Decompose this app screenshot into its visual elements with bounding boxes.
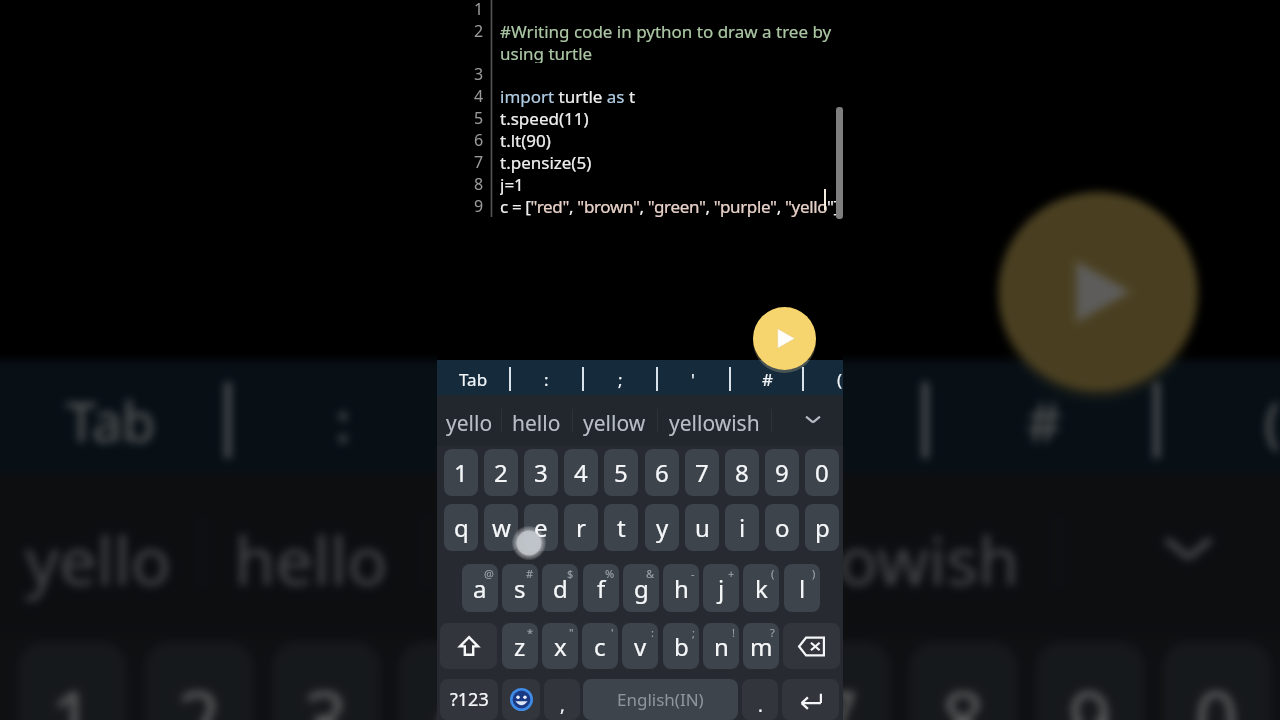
button[interactable]: Run bbox=[753, 307, 816, 370]
button[interactable]: # bbox=[985, 366, 1100, 477]
button[interactable]: 5 bbox=[526, 642, 634, 720]
button[interactable]: 0 bbox=[1163, 642, 1271, 720]
staticText: h bbox=[674, 572, 689, 605]
button[interactable]: . bbox=[742, 679, 778, 720]
button[interactable]: y bbox=[645, 504, 679, 551]
button[interactable]: b bbox=[663, 623, 699, 669]
button[interactable]: z bbox=[502, 623, 538, 669]
button[interactable]: 3 bbox=[272, 642, 380, 720]
button[interactable]: v bbox=[622, 623, 658, 669]
button[interactable]: g bbox=[623, 564, 659, 612]
staticText: 8 bbox=[941, 664, 986, 720]
button[interactable]: # bbox=[749, 362, 785, 397]
button[interactable]: yellow bbox=[424, 480, 694, 642]
button[interactable]: 2 bbox=[484, 449, 518, 496]
button[interactable]: t bbox=[604, 504, 638, 551]
button[interactable]: 1 bbox=[19, 642, 126, 720]
button[interactable]: 9 bbox=[1036, 642, 1144, 720]
button[interactable]: m bbox=[743, 623, 779, 669]
button[interactable]: x bbox=[542, 623, 578, 669]
staticText: x bbox=[554, 630, 567, 663]
staticText: f bbox=[597, 572, 606, 605]
staticText: ' bbox=[691, 368, 695, 391]
staticText: hello bbox=[512, 409, 561, 438]
button[interactable]: hello bbox=[199, 480, 424, 642]
button[interactable]: 6 bbox=[645, 449, 679, 496]
staticText: j=1 bbox=[500, 173, 524, 195]
button[interactable]: 4 bbox=[399, 642, 507, 720]
button[interactable]: c bbox=[582, 623, 618, 669]
staticText: ( bbox=[771, 566, 775, 581]
staticText: 3 bbox=[474, 63, 484, 85]
staticText: 3 bbox=[534, 456, 548, 489]
button[interactable]: 7 bbox=[783, 642, 890, 720]
button[interactable]: a bbox=[462, 564, 498, 612]
button[interactable]: More suggestions bbox=[787, 395, 839, 446]
button[interactable]: ?123 bbox=[440, 679, 498, 720]
button[interactable]: ' bbox=[675, 362, 711, 397]
button[interactable]: 7 bbox=[685, 449, 719, 496]
button[interactable]: e bbox=[524, 504, 558, 551]
staticText: ) bbox=[812, 566, 816, 581]
staticText: d bbox=[553, 572, 568, 605]
button[interactable]: yellow bbox=[572, 398, 657, 449]
button[interactable]: Tab bbox=[455, 362, 491, 397]
button[interactable]: h bbox=[663, 564, 699, 612]
button[interactable]: , bbox=[544, 679, 580, 720]
button[interactable]: yellowish bbox=[657, 398, 771, 449]
staticText: ?123 bbox=[450, 687, 489, 712]
button[interactable]: Tab bbox=[53, 366, 168, 477]
button[interactable]: ( bbox=[822, 362, 858, 397]
button[interactable]: Emoji bbox=[502, 679, 540, 720]
staticText: b bbox=[674, 630, 689, 663]
button[interactable]: Run bbox=[998, 192, 1198, 392]
staticText: 7 bbox=[474, 151, 484, 173]
button[interactable]: i bbox=[725, 504, 759, 551]
staticText: 4 bbox=[574, 456, 588, 489]
button[interactable]: 5 bbox=[604, 449, 638, 496]
button[interactable]: 3 bbox=[524, 449, 558, 496]
staticText: English(IN) bbox=[617, 688, 704, 711]
button[interactable]: ( bbox=[1217, 366, 1280, 477]
staticText: 8 bbox=[735, 456, 749, 489]
button[interactable]: w bbox=[484, 504, 518, 551]
button[interactable]: 9 bbox=[765, 449, 799, 496]
button[interactable]: 0 bbox=[805, 449, 839, 496]
button[interactable]: 8 bbox=[909, 642, 1017, 720]
button[interactable]: s bbox=[502, 564, 538, 612]
staticText: 6 bbox=[687, 664, 732, 720]
button[interactable]: yello bbox=[0, 480, 199, 642]
staticText: ' bbox=[611, 625, 614, 640]
button[interactable]: n bbox=[703, 623, 739, 669]
button[interactable]: hello bbox=[501, 398, 572, 449]
staticText: & bbox=[646, 566, 655, 581]
button[interactable]: Shift bbox=[440, 623, 497, 669]
button[interactable]: 8 bbox=[725, 449, 759, 496]
button[interactable]: u bbox=[685, 504, 719, 551]
button[interactable]: More suggestions bbox=[1106, 471, 1271, 633]
button[interactable]: q bbox=[444, 504, 478, 551]
button[interactable]: English(IN) bbox=[583, 679, 738, 720]
button[interactable]: yello bbox=[437, 398, 501, 449]
button[interactable]: ' bbox=[751, 366, 865, 477]
button[interactable]: d bbox=[542, 564, 578, 612]
button[interactable]: 6 bbox=[656, 642, 764, 720]
button[interactable]: : bbox=[528, 362, 564, 397]
staticText: j bbox=[718, 572, 725, 605]
button[interactable]: ; bbox=[519, 366, 634, 477]
button[interactable]: 4 bbox=[564, 449, 598, 496]
button[interactable]: yellowish bbox=[694, 480, 1055, 642]
button[interactable]: j bbox=[703, 564, 739, 612]
button[interactable]: Enter bbox=[782, 679, 839, 720]
button[interactable]: p bbox=[805, 504, 839, 551]
button[interactable]: 1 bbox=[444, 449, 478, 496]
button[interactable]: l bbox=[784, 564, 820, 612]
button[interactable]: f bbox=[583, 564, 619, 612]
button[interactable]: Backspace bbox=[783, 623, 840, 669]
button[interactable]: o bbox=[765, 504, 799, 551]
button[interactable]: 2 bbox=[145, 642, 253, 720]
button[interactable]: r bbox=[564, 504, 598, 551]
button[interactable]: ; bbox=[602, 362, 638, 397]
button[interactable]: k bbox=[743, 564, 779, 612]
